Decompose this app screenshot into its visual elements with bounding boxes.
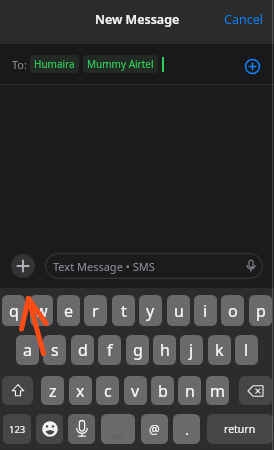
button[interactable]: 123 (3, 414, 31, 444)
staticText: q (9, 300, 19, 322)
button[interactable] (245, 59, 260, 74)
button[interactable] (2, 376, 33, 405)
staticText: d (78, 339, 88, 361)
button[interactable]: k (208, 335, 231, 365)
button[interactable]: i (194, 295, 217, 326)
button[interactable]: a (16, 335, 39, 365)
button[interactable]: t (112, 295, 135, 326)
staticText: z (49, 380, 57, 402)
staticText: c (104, 380, 112, 402)
staticText: w (35, 300, 48, 322)
button[interactable]: n (178, 376, 201, 405)
button[interactable]: u (167, 295, 190, 326)
button[interactable]: j (180, 335, 203, 365)
button[interactable]: f (98, 335, 121, 365)
button[interactable]: p (249, 295, 272, 326)
staticText: j (189, 339, 194, 361)
button[interactable]: x (69, 376, 92, 405)
staticText: s (51, 339, 59, 361)
button[interactable]: s (43, 335, 66, 365)
staticText: h (160, 339, 170, 361)
button[interactable]: Mummy Airtel (83, 55, 158, 73)
button[interactable]: q (2, 295, 25, 326)
button[interactable]: return (207, 414, 273, 444)
staticText: p (256, 300, 266, 322)
staticText: r (92, 300, 99, 322)
button[interactable]: r (84, 295, 107, 326)
button[interactable]: Text Message • SMS (45, 253, 263, 279)
button[interactable]: EN NL (101, 414, 135, 444)
button[interactable]: v (124, 376, 147, 405)
staticText: To: (12, 57, 27, 72)
staticText: b (158, 380, 168, 402)
staticText: 123 (9, 423, 26, 436)
button[interactable]: l (235, 335, 258, 365)
staticText: x (76, 380, 85, 402)
staticText: return (224, 422, 256, 436)
button[interactable] (36, 414, 63, 444)
button[interactable] (239, 376, 272, 405)
staticText: Humaira (34, 57, 75, 71)
staticText: New Message (95, 11, 180, 28)
button[interactable]: d (71, 335, 94, 365)
staticText: t (121, 300, 127, 322)
button[interactable]: e (57, 295, 80, 326)
staticText: l (244, 339, 249, 361)
button[interactable]: y (139, 295, 162, 326)
staticText: Text Message • SMS (53, 259, 155, 274)
button[interactable]: Humaira (30, 55, 79, 73)
staticText: m (210, 380, 225, 402)
staticText: . (185, 420, 189, 439)
staticText: i (203, 300, 208, 322)
staticText: u (174, 300, 184, 322)
staticText: g (133, 339, 143, 361)
button[interactable]: w (30, 295, 53, 326)
staticText: k (215, 339, 224, 361)
button[interactable]: b (151, 376, 174, 405)
staticText: f (107, 339, 113, 361)
staticText: EN NL (111, 434, 126, 441)
button[interactable]: . (173, 414, 200, 444)
staticText: o (228, 300, 238, 322)
button[interactable]: z (41, 376, 64, 405)
staticText: y (146, 300, 155, 322)
button[interactable]: o (221, 295, 244, 326)
button[interactable]: g (126, 335, 149, 365)
button[interactable]: m (206, 376, 229, 405)
staticText: a (23, 339, 32, 361)
staticText: Mummy Airtel (87, 57, 154, 71)
button[interactable]: Cancel (224, 11, 263, 28)
button[interactable]: h (153, 335, 176, 365)
staticText: v (131, 380, 140, 402)
staticText: Cancel (224, 11, 263, 28)
button[interactable]: c (96, 376, 119, 405)
staticText: e (64, 300, 74, 322)
button[interactable] (68, 414, 95, 444)
staticText: n (185, 380, 195, 402)
staticText: @ (149, 421, 160, 437)
button[interactable] (11, 254, 35, 278)
button[interactable]: @ (141, 414, 168, 444)
